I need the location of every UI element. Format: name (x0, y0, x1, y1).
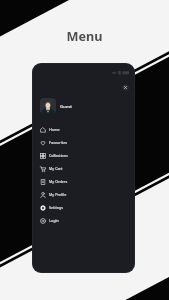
staticText: Home (49, 127, 60, 132)
staticText: My Cart (49, 166, 63, 171)
staticText: My Profile (49, 192, 67, 197)
staticText: Guest (60, 103, 73, 109)
staticText: My Orders (49, 179, 68, 184)
staticText: Favourites (49, 140, 68, 145)
button[interactable]: Collections (33, 149, 134, 162)
button[interactable]: Settings (33, 201, 134, 214)
staticText: Settings (49, 205, 64, 210)
button[interactable]: Guest (33, 96, 134, 116)
button[interactable]: My Orders (33, 175, 134, 188)
button[interactable]: My Cart (33, 162, 134, 175)
staticText: Login (49, 218, 59, 223)
staticText: Menu (66, 27, 103, 44)
staticText: Collections (49, 153, 68, 158)
button[interactable]: Close drawer (122, 84, 129, 91)
button[interactable]: My Profile (33, 188, 134, 201)
button[interactable]: Login (33, 214, 134, 227)
button[interactable]: Home (33, 123, 134, 136)
button[interactable]: Favourites (33, 136, 134, 149)
